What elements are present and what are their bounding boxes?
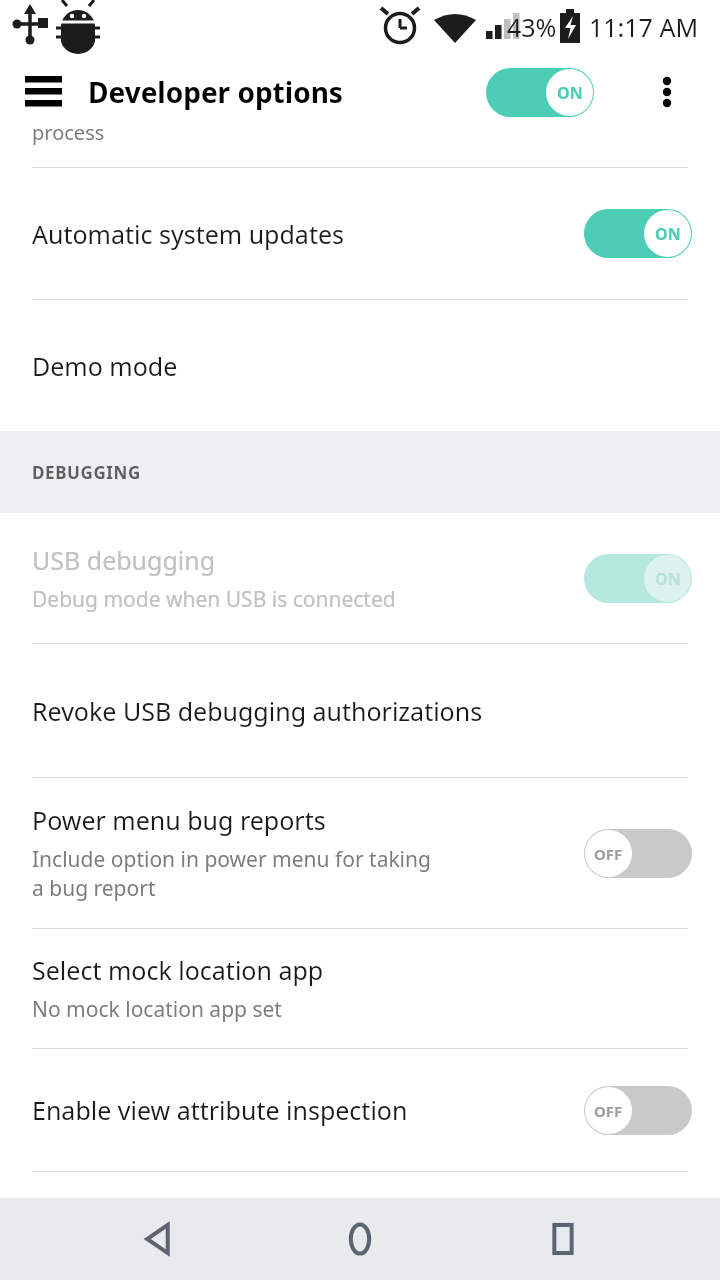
button[interactable]: Recents (518, 1198, 608, 1280)
staticText: DEBUGGING (32, 461, 141, 484)
staticText: Power menu bug reports (32, 803, 326, 837)
staticText: Demo mode (32, 349, 178, 383)
button[interactable]: More options (640, 65, 694, 119)
button[interactable]: Demo mode (0, 300, 720, 431)
button[interactable]: Home (315, 1198, 405, 1280)
staticText: USB debugging (32, 543, 216, 577)
button[interactable]: Back (113, 1198, 203, 1280)
staticText: Debug mode when USB is connected (32, 585, 576, 614)
staticText: Include option in power menu for taking … (32, 845, 445, 903)
staticText: Revoke USB debugging authorizations (32, 694, 483, 728)
staticText: OFF (594, 844, 623, 864)
button[interactable]: Power menu bug reports (0, 778, 720, 928)
button[interactable]: Automatic system updates (0, 168, 720, 299)
button[interactable]: USB debugging (0, 513, 720, 643)
button[interactable]: Select mock location app (0, 929, 720, 1048)
staticText: No mock location app set (32, 995, 692, 1024)
staticText: ON (655, 223, 681, 245)
button[interactable]: Toggle ON (584, 554, 692, 603)
staticText: process (32, 119, 105, 146)
staticText: ON (655, 568, 681, 590)
button[interactable]: Toggle ON (584, 209, 692, 258)
button[interactable]: Toggle ON (486, 68, 594, 117)
staticText: OFF (594, 1101, 623, 1121)
staticText: Developer options (88, 73, 343, 111)
button[interactable]: Enable view attribute inspection (0, 1049, 720, 1171)
staticText: 11:17 AM (589, 10, 699, 44)
button[interactable]: Toggle OFF (584, 829, 692, 878)
staticText: Select mock location app (32, 953, 324, 987)
staticText: ON (557, 82, 583, 104)
staticText: 43% (507, 10, 557, 44)
button[interactable]: Open navigation drawer (14, 62, 74, 122)
button[interactable]: Toggle OFF (584, 1086, 692, 1135)
staticText: Automatic system updates (32, 217, 344, 251)
staticText: Enable view attribute inspection (32, 1093, 408, 1127)
button[interactable]: Revoke USB debugging authorizations (0, 644, 720, 777)
